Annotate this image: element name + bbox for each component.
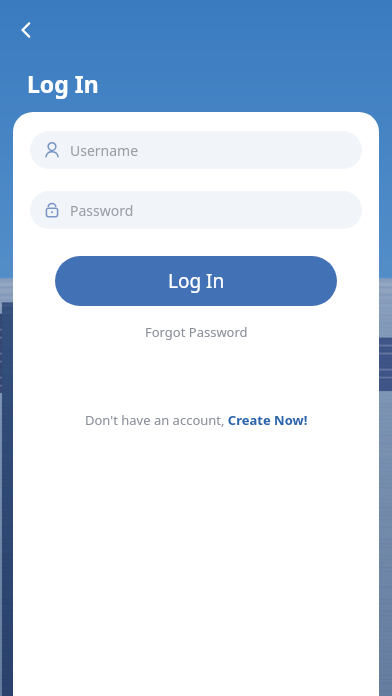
staticText: Username — [70, 141, 139, 160]
button[interactable]: Log In — [55, 256, 337, 306]
staticText: Log In — [168, 268, 225, 294]
staticText: Password — [70, 201, 134, 220]
staticText: Log In — [27, 68, 99, 99]
staticText: Forgot Password — [145, 323, 248, 341]
button[interactable]: Username — [30, 131, 362, 169]
button[interactable]: Forgot Password — [137, 319, 256, 345]
button[interactable]: Don't have an account, Create Now! — [77, 407, 316, 433]
button[interactable]: Back — [8, 12, 44, 48]
staticText: Don't have an account, Create Now! — [85, 411, 308, 429]
button[interactable]: Password — [30, 191, 362, 229]
